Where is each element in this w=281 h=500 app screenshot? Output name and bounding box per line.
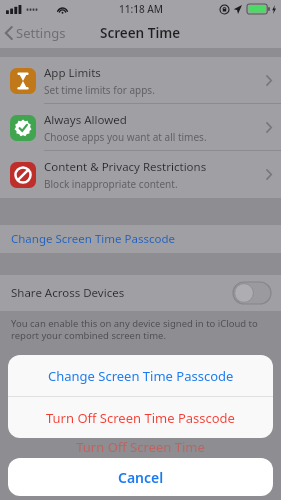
- staticText: Set time limits for apps.: [44, 83, 155, 97]
- button[interactable]: App Limits: [0, 57, 281, 104]
- staticText: Block inappropriate content.: [44, 177, 178, 191]
- button[interactable]: Cancel: [8, 458, 273, 496]
- staticText: Screen Time: [100, 24, 181, 42]
- button[interactable]: Change Screen Time Passcode: [0, 225, 281, 253]
- button[interactable]: Always Allowed: [0, 104, 281, 151]
- staticText: Cancel: [118, 468, 164, 487]
- staticText: Content & Privacy Restrictions: [44, 159, 207, 175]
- staticText: Share Across Devices: [11, 285, 125, 301]
- staticText: Settings: [16, 24, 66, 42]
- staticText: App Limits: [44, 65, 101, 81]
- button[interactable]: Change Screen Time Passcode: [8, 355, 273, 396]
- staticText: Turn Off Screen Time: [0, 438, 281, 456]
- staticText: ••••: [26, 4, 39, 15]
- staticText: Turn Off Screen Time Passcode: [46, 409, 235, 427]
- staticText: Change Screen Time Passcode: [11, 231, 175, 247]
- staticText: Always Allowed: [44, 112, 127, 128]
- staticText: Choose apps you want at all times.: [44, 130, 207, 144]
- other: Share Across Devices toggle, off: [233, 282, 271, 304]
- button[interactable]: Turn Off Screen Time Passcode: [8, 397, 273, 438]
- staticText: You can enable this on any device signed…: [11, 317, 265, 342]
- button[interactable]: Settings: [0, 20, 74, 46]
- button[interactable]: Content & Privacy Restrictions: [0, 151, 281, 198]
- staticText: 11:18 AM: [119, 2, 163, 16]
- staticText: Change Screen Time Passcode: [48, 367, 234, 385]
- button[interactable]: Share Across Devices: [0, 275, 281, 311]
